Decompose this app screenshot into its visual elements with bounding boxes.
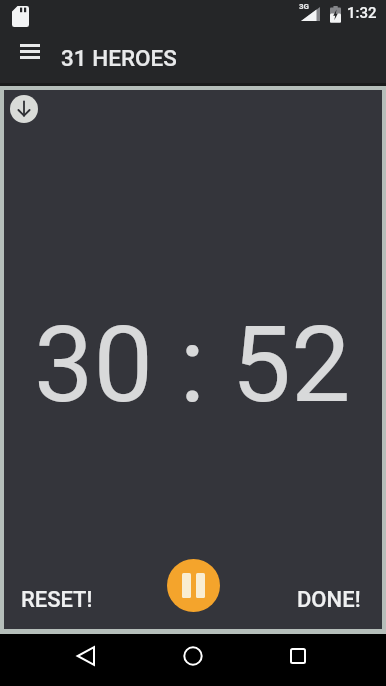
button[interactable] — [274, 634, 322, 678]
staticText: RESET! — [21, 587, 93, 613]
staticText: 31 HEROES — [61, 45, 177, 71]
staticText: 1:32 — [347, 4, 377, 22]
button[interactable] — [167, 559, 220, 612]
button[interactable]: DONE! — [297, 587, 361, 613]
staticText: 30 : 52 — [34, 303, 351, 427]
button[interactable]: RESET! — [21, 587, 93, 613]
button[interactable] — [10, 95, 38, 123]
staticText: 3G — [299, 2, 310, 11]
button[interactable] — [169, 634, 217, 678]
button[interactable] — [14, 40, 46, 64]
staticText: DONE! — [297, 587, 361, 613]
button[interactable] — [62, 634, 110, 678]
